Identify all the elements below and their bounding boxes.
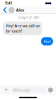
staticText: +	[4, 86, 7, 94]
button[interactable]: Alex	[8, 7, 24, 13]
staticText: Today 9:41 AM	[18, 16, 38, 19]
staticText: Yes!	[43, 39, 50, 44]
staticText: 9:41	[5, 0, 12, 6]
staticText: Alex	[16, 7, 24, 13]
staticText: Hey! Are we still on for lunch?	[5, 23, 39, 34]
button[interactable]: Back	[3, 6, 8, 13]
staticText: ●●●	[45, 1, 51, 4]
staticText: iMessage	[13, 87, 30, 93]
button[interactable]: Add	[3, 86, 9, 94]
button[interactable]: Audio	[48, 87, 53, 92]
